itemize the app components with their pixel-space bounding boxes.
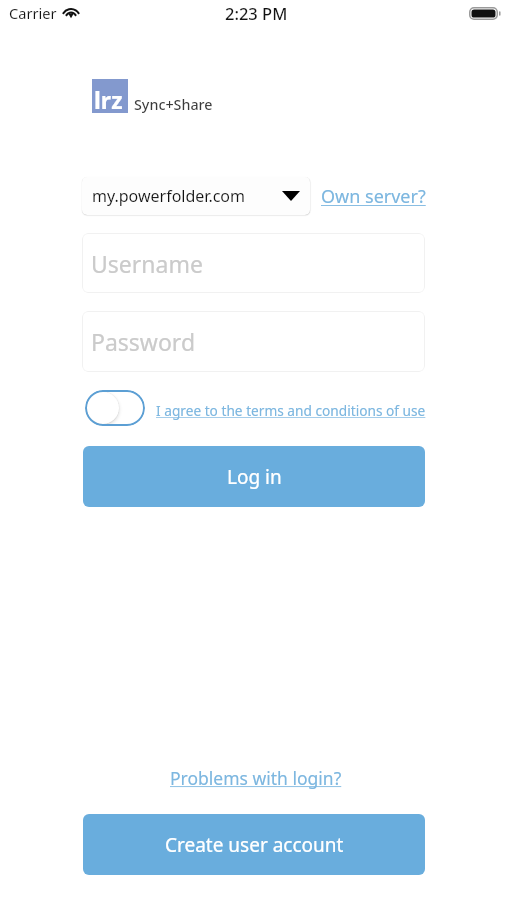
staticText: I agree to the terms and conditions of u… (156, 401, 426, 420)
staticText: 2:23 PM (225, 2, 288, 24)
staticText: Own server? (321, 184, 426, 209)
staticText: Problems with login? (170, 766, 342, 790)
staticText: my.powerfolder.com (92, 185, 246, 207)
button[interactable]: Log in (83, 446, 425, 507)
button[interactable]: Accept terms toggle (85, 390, 145, 426)
staticText: Create user account (165, 832, 344, 858)
button[interactable]: Username (82, 233, 425, 293)
button[interactable]: Problems with login? (2, 766, 507, 790)
staticText: Log in (227, 464, 282, 490)
staticText: Password (91, 326, 196, 357)
staticText: Carrier (9, 3, 57, 23)
button[interactable]: Password (82, 311, 425, 372)
staticText: Sync+Share (134, 95, 213, 114)
button[interactable]: my.powerfolder.com (82, 177, 310, 215)
other: Wi-Fi signal (62, 6, 80, 18)
button[interactable]: I agree to the terms and conditions of u… (156, 401, 426, 420)
button[interactable]: Create user account (83, 814, 425, 875)
staticText: Username (91, 248, 203, 279)
staticText: lrz (94, 84, 123, 115)
button[interactable]: Own server? (321, 184, 426, 209)
